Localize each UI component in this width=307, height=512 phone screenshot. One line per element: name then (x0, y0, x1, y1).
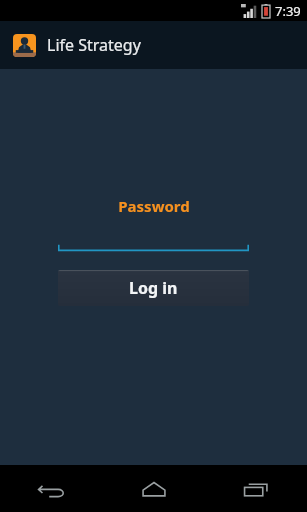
staticText: Log in (129, 277, 178, 299)
staticText: Life Strategy (47, 34, 141, 56)
button[interactable]: Log in (58, 270, 249, 306)
staticText: 7:39 (275, 2, 301, 20)
button[interactable]: Recent apps (205, 465, 307, 512)
staticText: Password (118, 196, 190, 216)
button[interactable]: Home (103, 465, 205, 512)
button[interactable]: Password input (58, 242, 249, 256)
button[interactable]: Back (0, 465, 103, 512)
